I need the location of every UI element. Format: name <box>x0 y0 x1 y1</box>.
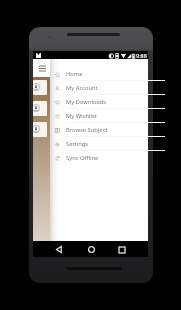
button[interactable]: Settings <box>50 137 148 151</box>
staticText: My Account <box>66 84 98 92</box>
button[interactable]: Home <box>50 67 148 81</box>
button[interactable]: Recents <box>116 244 128 256</box>
button[interactable]: My Wishlist <box>50 109 148 123</box>
staticText: My Wishlist <box>66 112 97 120</box>
staticText: Settings <box>66 140 89 148</box>
staticText: Browse Subject <box>66 126 108 134</box>
button[interactable]: Browse Subject <box>50 123 148 137</box>
button[interactable]: Back <box>53 243 65 255</box>
button[interactable]: My Downloads <box>50 95 148 109</box>
button[interactable]: Open navigation drawer <box>35 61 49 75</box>
staticText: Home <box>66 70 83 78</box>
button[interactable]: My Account <box>50 81 148 95</box>
staticText: My Downloads <box>66 98 107 106</box>
button[interactable]: Home <box>85 243 97 255</box>
staticText: Sync Offline <box>66 154 99 162</box>
button[interactable]: Sync Offline <box>50 151 148 165</box>
staticText: 9:88 <box>136 52 147 59</box>
